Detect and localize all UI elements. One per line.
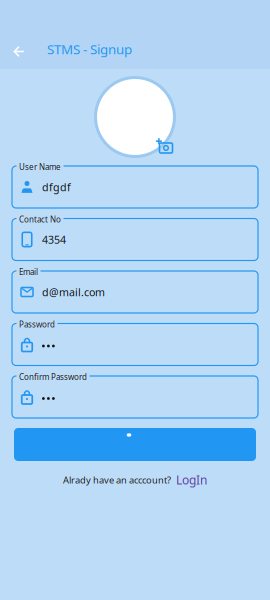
staticText: Confirm Password [19,371,87,382]
staticText: User Name [19,161,61,172]
button[interactable]: Confirm Password [12,376,258,418]
button[interactable]: Back [6,36,32,62]
button[interactable]: Password [12,323,258,365]
staticText: Password [19,319,55,330]
staticText: Email [19,266,38,277]
button[interactable]: LogIn [176,472,207,488]
button[interactable]: Change profile photo [94,77,176,157]
staticText: STMS - Signup [47,40,132,58]
button[interactable]: Contact No [12,218,258,260]
button[interactable]: Sign Up [0,428,270,461]
staticText: LogIn [176,472,207,488]
button[interactable]: User Name [12,166,258,208]
button[interactable]: Email [12,271,258,313]
staticText: 4354 [42,232,66,247]
staticText: d@mail.com [42,285,105,299]
staticText: Contact No [19,214,61,225]
staticText: dfgdf [42,180,71,194]
staticText: Alrady have an acccount? [63,474,171,486]
